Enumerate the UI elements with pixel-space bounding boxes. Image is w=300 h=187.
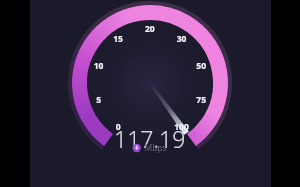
button[interactable]: Speed test gauge showing 117.19 Mbps xyxy=(0,0,300,187)
